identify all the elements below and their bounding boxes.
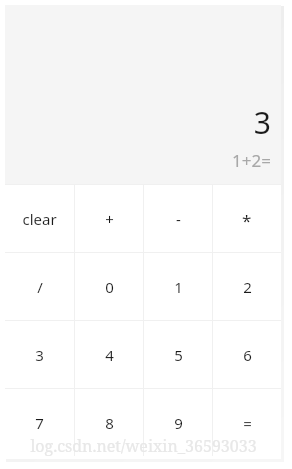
- button[interactable]: /: [5, 253, 74, 320]
- staticText: 7: [35, 413, 44, 433]
- staticText: clear: [22, 209, 57, 229]
- button[interactable]: 0: [75, 253, 143, 320]
- button[interactable]: +: [75, 185, 143, 252]
- staticText: 0: [105, 277, 114, 297]
- staticText: =: [243, 413, 252, 433]
- button[interactable]: -: [144, 185, 212, 252]
- button[interactable]: =: [213, 389, 281, 456]
- button[interactable]: 2: [213, 253, 281, 320]
- staticText: 5: [174, 345, 183, 365]
- staticText: 9: [174, 413, 183, 433]
- button[interactable]: clear: [5, 185, 74, 252]
- staticText: 1: [174, 277, 183, 297]
- staticText: 3: [5, 102, 271, 143]
- staticText: 2: [243, 277, 252, 297]
- button[interactable]: *: [213, 185, 281, 252]
- staticText: -: [176, 209, 181, 229]
- button[interactable]: 5: [144, 321, 212, 388]
- button[interactable]: 1: [144, 253, 212, 320]
- staticText: /: [37, 277, 43, 297]
- staticText: 3: [35, 345, 44, 365]
- staticText: 8: [105, 413, 114, 433]
- button[interactable]: 4: [75, 321, 143, 388]
- staticText: 4: [105, 345, 114, 365]
- button[interactable]: 9: [144, 389, 212, 456]
- staticText: log.csdn.net/weixin_36593033: [30, 435, 257, 457]
- button[interactable]: 7: [5, 389, 74, 456]
- staticText: *: [242, 209, 252, 229]
- button[interactable]: 6: [213, 321, 281, 388]
- button[interactable]: 8: [75, 389, 143, 456]
- staticText: 1+2=: [5, 149, 271, 172]
- staticText: 6: [243, 345, 252, 365]
- button[interactable]: 3: [5, 321, 74, 388]
- staticText: +: [105, 209, 114, 229]
